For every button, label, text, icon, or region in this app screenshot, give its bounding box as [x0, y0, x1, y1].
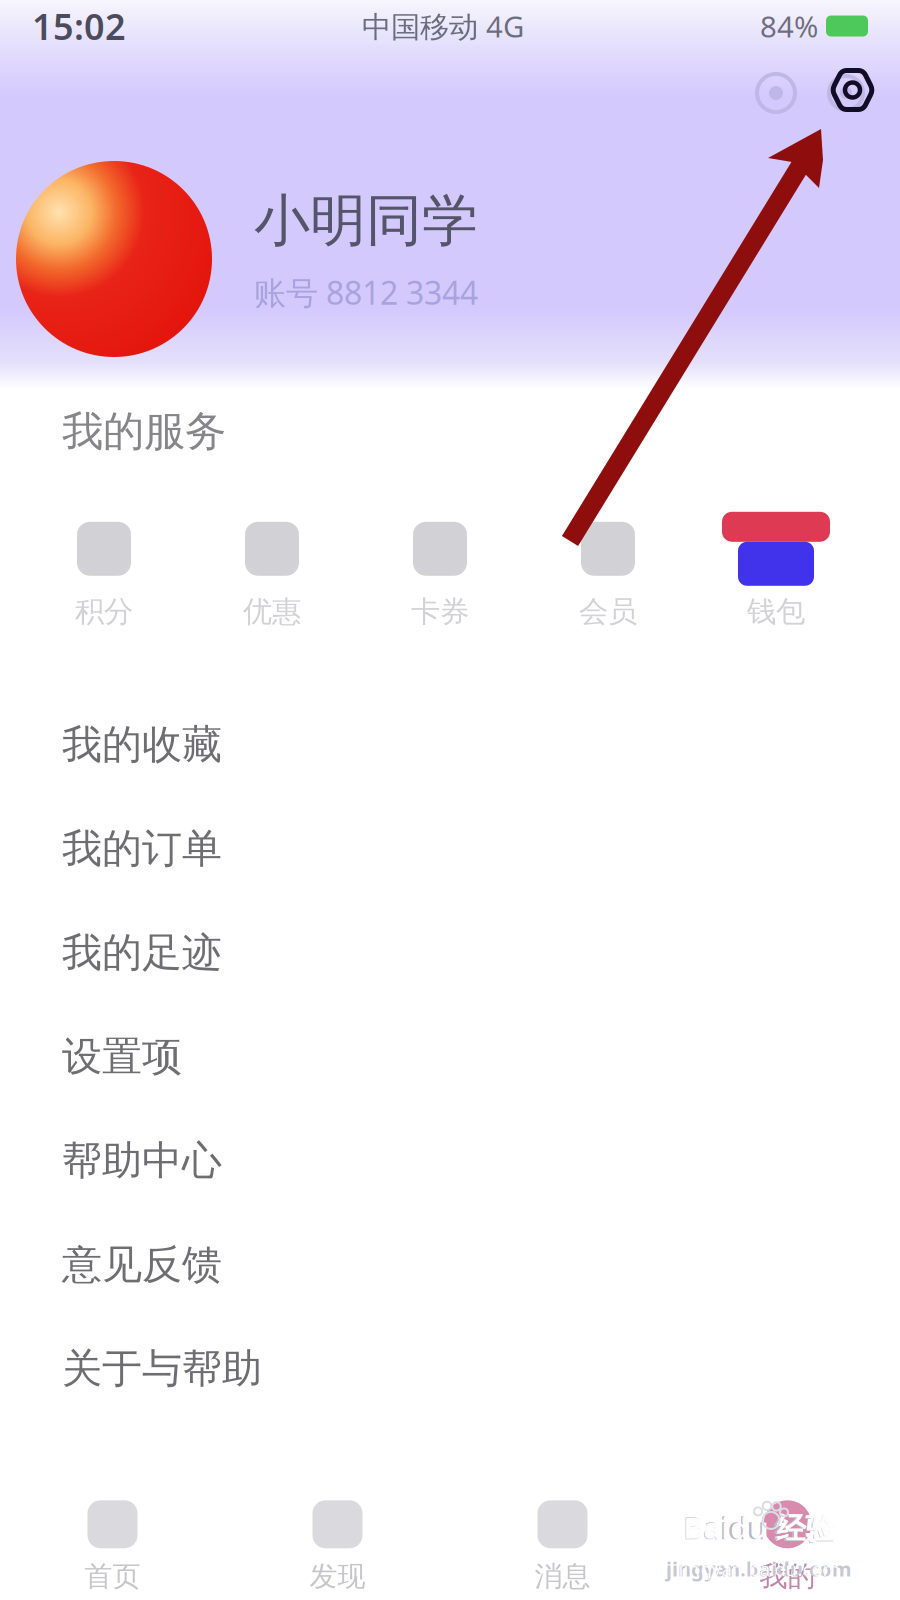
- button[interactable]: 设置项: [0, 1005, 900, 1109]
- staticText: 关于与帮助: [62, 1344, 262, 1393]
- button[interactable]: 意见反馈: [0, 1213, 900, 1317]
- button[interactable]: Scan QR code: [752, 69, 800, 117]
- button[interactable]: Settings: [822, 69, 870, 117]
- staticText: 钱包: [747, 594, 805, 630]
- staticText: Baidu 经验: [681, 1507, 837, 1548]
- staticText: 会员: [579, 594, 637, 630]
- staticText: 发现: [309, 1559, 365, 1594]
- button[interactable]: 积分: [20, 518, 188, 630]
- button[interactable]: 优惠: [188, 518, 356, 630]
- staticText: 小明同学: [254, 186, 478, 255]
- button[interactable]: 我的足迹: [0, 901, 900, 1005]
- staticText: 消息: [534, 1559, 590, 1594]
- button[interactable]: 我的: [675, 1449, 900, 1600]
- button[interactable]: 关于与帮助: [0, 1317, 900, 1421]
- button[interactable]: 小明同学: [212, 186, 556, 332]
- button[interactable]: 帮助中心: [0, 1109, 900, 1213]
- staticText: 我的收藏: [62, 720, 222, 769]
- staticText: 我的足迹: [62, 928, 222, 977]
- staticText: 中国移动 4G: [362, 6, 524, 45]
- staticText: 积分: [75, 594, 133, 630]
- staticText: jingyan.baidu.com: [666, 1555, 852, 1582]
- staticText: Baidu 经验: [683, 1508, 834, 1547]
- staticText: 设置项: [62, 1032, 182, 1081]
- button[interactable]: 钱包: [692, 518, 860, 630]
- staticText: 我的服务: [62, 406, 226, 457]
- button[interactable]: 我的订单: [0, 797, 900, 901]
- button[interactable]: 消息: [450, 1449, 675, 1600]
- button[interactable]: 会员: [524, 518, 692, 630]
- button[interactable]: 发现: [225, 1449, 450, 1600]
- staticText: 84%: [760, 6, 818, 45]
- button[interactable]: 我的收藏: [0, 693, 900, 797]
- staticText: Baidu 经验: [682, 1507, 835, 1548]
- staticText: 帮助中心: [62, 1136, 222, 1185]
- staticText: 意见反馈: [62, 1240, 222, 1289]
- staticText: 首页: [84, 1559, 140, 1594]
- staticText: 卡券: [411, 594, 469, 630]
- button[interactable]: 首页: [0, 1449, 225, 1600]
- staticText: 我的: [759, 1559, 815, 1594]
- staticText: 优惠: [243, 594, 301, 630]
- button[interactable]: Profile photo: [16, 161, 212, 357]
- staticText: 15:02: [32, 2, 126, 50]
- staticText: 账号 8812 3344: [254, 271, 478, 314]
- staticText: 我的订单: [62, 824, 222, 873]
- button[interactable]: 卡券: [356, 518, 524, 630]
- staticText: jingyan.baidu.com: [678, 1556, 839, 1581]
